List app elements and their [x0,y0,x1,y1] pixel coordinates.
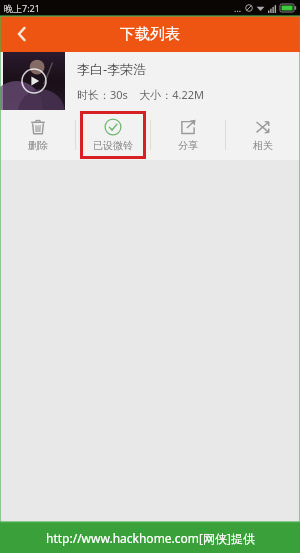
staticText: 晚上7:21 [4,2,40,14]
staticText: http://www.hackhome.com[网侠]提供 [46,530,255,546]
button[interactable]: 相关 [226,110,300,160]
button[interactable]: 删除 [0,110,75,160]
staticText: 分享 [178,139,198,152]
button[interactable]: 李白-李荣浩 [0,52,300,110]
staticText: ... [234,2,242,14]
staticText: 删除 [28,139,48,152]
staticText: 李白-李荣浩 [77,60,147,78]
button[interactable]: 已设微铃 [80,111,146,159]
staticText: 已设微铃 [93,139,133,152]
staticText: 时长：30s 大小：4.22M [77,87,205,102]
button[interactable]: 分享 [151,110,225,160]
button[interactable]: Back [0,16,44,52]
staticText: 相关 [253,139,273,152]
staticText: 下载列表 [120,25,180,44]
